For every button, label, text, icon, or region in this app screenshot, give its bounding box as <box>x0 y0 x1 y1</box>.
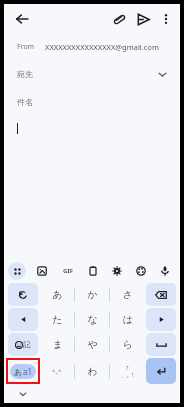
staticText: From <box>17 42 35 52</box>
staticText: 宛先 <box>17 69 33 79</box>
staticText: た <box>52 313 63 326</box>
button[interactable]: From <box>4 34 180 60</box>
staticText: あ <box>14 367 23 377</box>
staticText: は <box>122 313 133 326</box>
button[interactable]: Clipboard <box>84 262 102 280</box>
button[interactable]: Cursor left <box>8 308 38 331</box>
button[interactable]: Backspace <box>146 283 176 306</box>
button[interactable]: は <box>111 308 143 331</box>
staticText: や <box>87 338 98 351</box>
staticText: XXXXXXXXXXXXXXXX@gmail.com <box>45 42 159 52</box>
staticText: 件名 <box>17 97 33 107</box>
other: Expand recipients <box>154 66 170 82</box>
button[interactable]: Attach file <box>107 7 131 31</box>
button[interactable]: な <box>76 308 108 331</box>
button[interactable]: More options <box>155 8 177 30</box>
button[interactable] <box>4 116 180 140</box>
button[interactable]: GIF <box>58 262 78 280</box>
button[interactable]: Keyboard apps <box>8 262 26 280</box>
button[interactable]: Themes <box>132 262 150 280</box>
button[interactable]: 宛先 <box>4 60 180 88</box>
button[interactable]: Emoji and symbols <box>8 333 38 356</box>
button[interactable]: Kaomoji <box>41 358 73 384</box>
button[interactable]: た <box>41 308 73 331</box>
button[interactable]: あ <box>41 283 73 306</box>
button[interactable]: Sticker <box>33 262 51 280</box>
button[interactable]: Send <box>131 7 155 31</box>
staticText: GIF <box>63 267 73 275</box>
staticText: わ <box>87 365 98 378</box>
staticText: ら <box>122 338 133 351</box>
button[interactable]: ま <box>41 333 73 356</box>
button[interactable]: Cursor right <box>146 308 176 331</box>
button[interactable]: Voice input <box>156 262 174 280</box>
staticText: な <box>87 313 98 326</box>
staticText: ^_^ <box>52 367 62 375</box>
button[interactable]: Space <box>146 333 176 356</box>
button[interactable]: や <box>76 333 108 356</box>
staticText: さ <box>122 288 133 301</box>
button[interactable]: Punctuation <box>111 358 143 384</box>
button[interactable]: わ <box>76 358 108 384</box>
button[interactable]: ら <box>111 333 143 356</box>
staticText: ま <box>52 338 63 351</box>
staticText: あ <box>52 288 63 301</box>
staticText: か <box>87 288 98 301</box>
button[interactable]: か <box>76 283 108 306</box>
button[interactable]: さ <box>111 283 143 306</box>
staticText: 、。! <box>121 371 134 379</box>
button[interactable]: Enter <box>146 358 176 384</box>
button[interactable]: Undo <box>8 283 38 306</box>
staticText: 記 <box>23 340 31 349</box>
button[interactable]: Hide keyboard <box>16 387 30 401</box>
staticText: a1 <box>23 366 33 377</box>
button[interactable]: 件名 <box>4 88 180 116</box>
button[interactable]: Switch input mode <box>10 364 36 379</box>
staticText: ? <box>126 364 129 371</box>
button[interactable]: Settings <box>108 262 126 280</box>
button[interactable]: Back <box>10 7 34 31</box>
